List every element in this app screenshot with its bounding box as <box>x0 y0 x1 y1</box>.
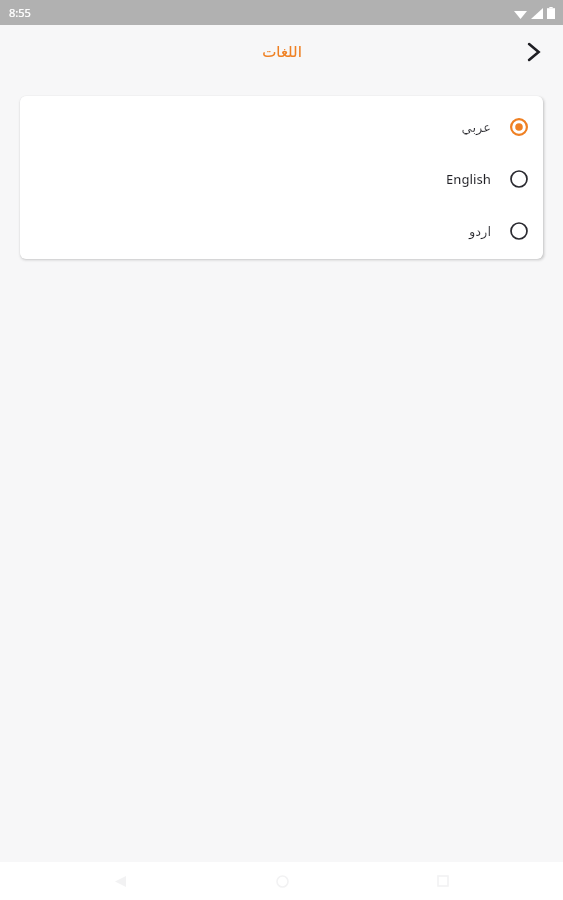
staticText: عربي <box>461 120 491 135</box>
button[interactable]: عربي <box>20 101 543 153</box>
staticText: English <box>446 170 491 188</box>
button[interactable]: Back <box>511 30 555 74</box>
staticText: اللغات <box>262 43 302 60</box>
button[interactable]: اردو <box>20 205 543 257</box>
staticText: 8:55 <box>9 5 31 20</box>
button[interactable]: English <box>20 153 543 205</box>
staticText: اردو <box>469 224 491 239</box>
